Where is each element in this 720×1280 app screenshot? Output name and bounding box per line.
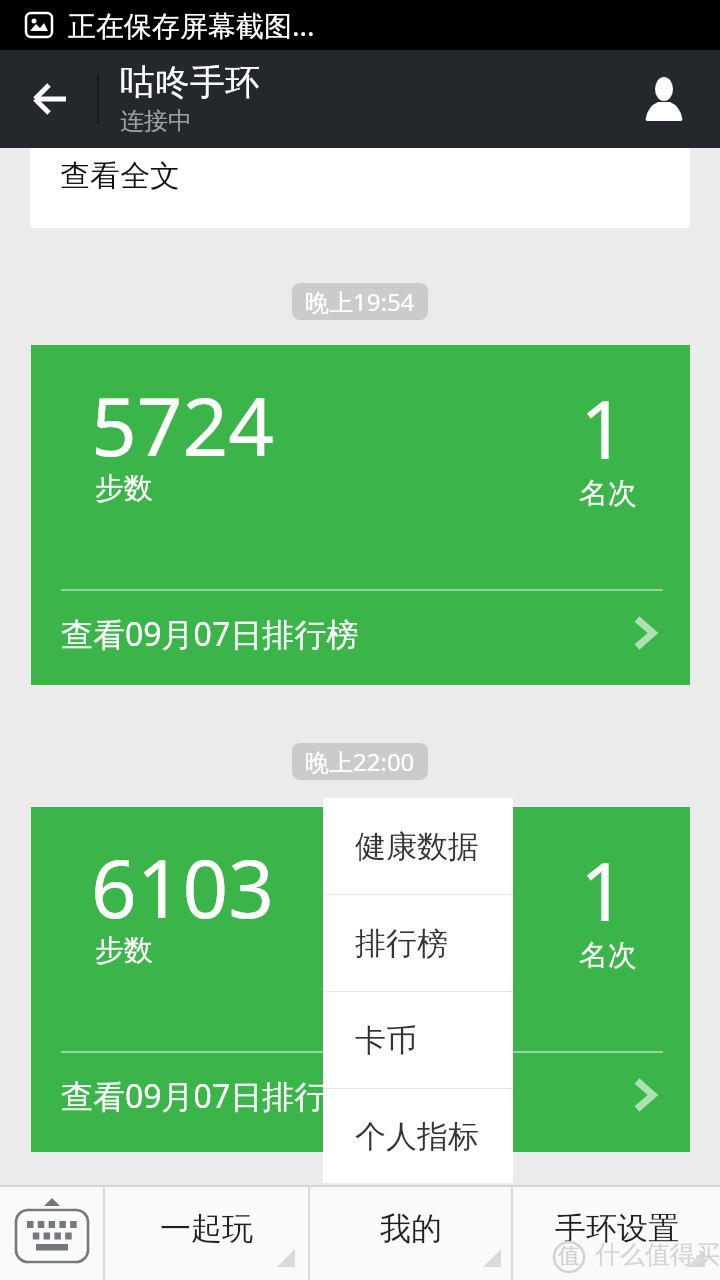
button[interactable]: 健康数据 <box>323 798 513 894</box>
staticText: 一起玩 <box>160 1209 253 1248</box>
button[interactable]: 查看09月07日排行榜 <box>31 603 690 665</box>
staticText: 排行榜 <box>355 924 448 963</box>
staticText: 查看全文 <box>60 157 180 195</box>
staticText: 步数 <box>95 470 153 507</box>
staticText: 查看09月07日排行榜 <box>61 612 359 656</box>
staticText: 晚上19:54 <box>305 285 415 318</box>
staticText: 名次 <box>579 475 637 512</box>
button[interactable] <box>0 1185 103 1280</box>
staticText: 6103 <box>91 832 275 941</box>
staticText: 查看09月07日排行榜 <box>61 1074 359 1118</box>
staticText: 卡币 <box>355 1021 417 1060</box>
staticText: 什么值得买 <box>595 1239 720 1269</box>
staticText: 名次 <box>579 937 637 974</box>
button[interactable] <box>10 50 90 148</box>
button[interactable]: 一起玩 <box>105 1185 308 1280</box>
staticText: 正在保存屏幕截图... <box>68 6 315 44</box>
button[interactable]: 个人指标 <box>323 1089 513 1183</box>
staticText: 1 <box>580 835 626 944</box>
staticText: 5724 <box>91 370 275 479</box>
button[interactable]: 查看09月07日排行榜 <box>31 1065 690 1127</box>
staticText: 晚上22:00 <box>305 745 415 778</box>
staticText: 我的 <box>380 1209 442 1248</box>
button[interactable]: 手环设置 <box>513 1185 720 1280</box>
staticText: 值 <box>558 1242 580 1270</box>
button[interactable]: 我的 <box>310 1185 511 1280</box>
staticText: 个人指标 <box>355 1117 479 1156</box>
staticText: 步数 <box>95 932 153 969</box>
button[interactable] <box>624 50 704 148</box>
button[interactable]: 排行榜 <box>323 895 513 991</box>
staticText: 1 <box>580 373 626 482</box>
staticText: 咕咚手环 <box>120 60 260 104</box>
staticText: 手环设置 <box>555 1209 679 1248</box>
button[interactable]: 查看全文 <box>30 148 690 228</box>
staticText: 连接中 <box>120 106 192 136</box>
button[interactable]: 卡币 <box>323 992 513 1088</box>
staticText: 健康数据 <box>355 827 479 866</box>
